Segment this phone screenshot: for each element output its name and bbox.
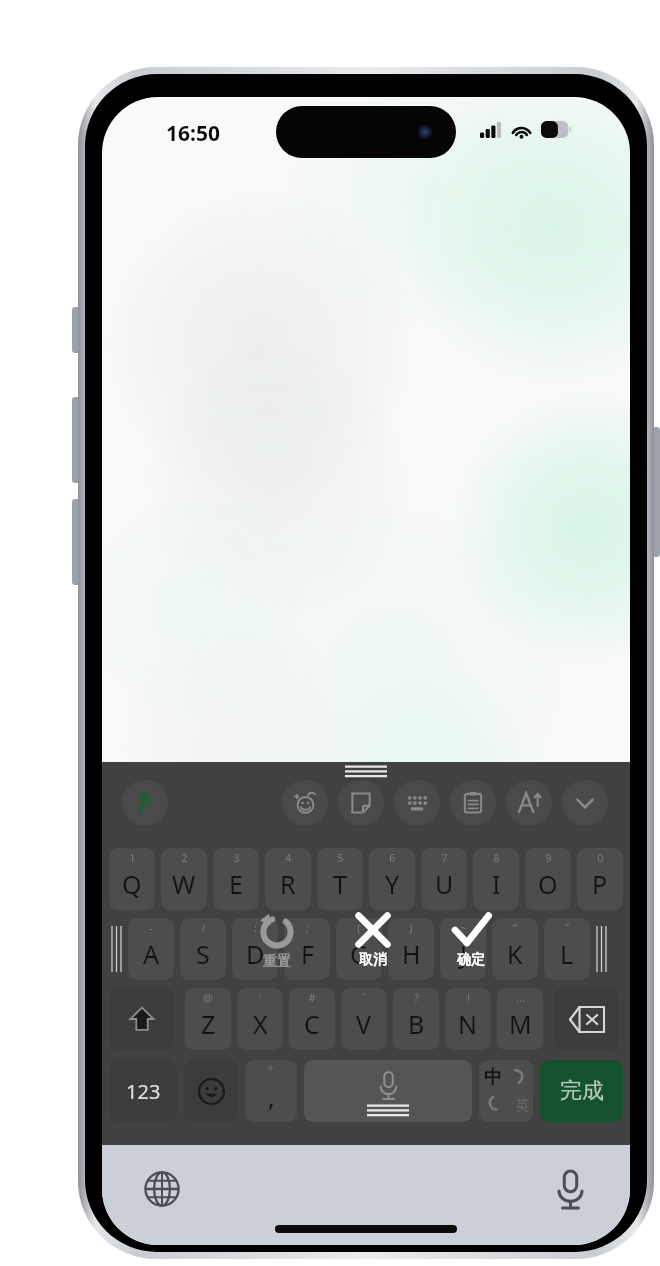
- staticText: P: [592, 867, 608, 901]
- button[interactable]: 1: [109, 848, 155, 910]
- staticText: W: [172, 867, 196, 901]
- button[interactable]: Shortcut phrase: [338, 780, 384, 826]
- staticText: 9: [545, 850, 552, 865]
- staticText: 0: [597, 850, 604, 865]
- staticText: 确定: [457, 951, 485, 969]
- staticText: R: [280, 867, 296, 901]
- button[interactable]: ~: [440, 918, 486, 980]
- staticText: ;: [306, 920, 309, 935]
- button[interactable]: 3: [213, 848, 259, 910]
- staticText: !: [467, 990, 470, 1005]
- staticText: `: [362, 990, 366, 1005]
- button[interactable]: Hide keyboard: [562, 780, 608, 826]
- button[interactable]: 2: [161, 848, 207, 910]
- staticText: X: [253, 1007, 268, 1041]
- staticText: E: [229, 867, 243, 901]
- staticText: F: [301, 937, 314, 971]
- staticText: 123: [126, 1078, 161, 1105]
- button[interactable]: Voice input space: [304, 1060, 472, 1122]
- staticText: K: [507, 937, 523, 971]
- button[interactable]: 6: [369, 848, 415, 910]
- button[interactable]: `: [341, 988, 387, 1050]
- staticText: O: [538, 867, 558, 901]
- button[interactable]: :: [232, 918, 278, 980]
- button[interactable]: @: [185, 988, 231, 1050]
- staticText: 1: [129, 850, 136, 865]
- button[interactable]: Switch Chinese English: [479, 1060, 533, 1122]
- staticText: (: [357, 920, 361, 935]
- button[interactable]: !: [445, 988, 491, 1050]
- button[interactable]: 7: [421, 848, 467, 910]
- staticText: V: [356, 1007, 372, 1041]
- button[interactable]: -: [128, 918, 174, 980]
- button[interactable]: 确定: [442, 910, 500, 969]
- button[interactable]: Emoji sticker: [282, 780, 328, 826]
- staticText: #: [308, 990, 316, 1005]
- button[interactable]: …: [497, 988, 543, 1050]
- staticText: S: [196, 937, 210, 971]
- staticText: °: [268, 1062, 274, 1078]
- staticText: 完成: [560, 1077, 604, 1105]
- staticText: ): [409, 920, 413, 935]
- button[interactable]: Voice input: [548, 1167, 592, 1211]
- staticText: ?: [414, 990, 419, 1005]
- button[interactable]: “: [492, 918, 538, 980]
- staticText: Y: [385, 867, 400, 901]
- button[interactable]: ): [388, 918, 434, 980]
- button[interactable]: 5: [317, 848, 363, 910]
- button[interactable]: Emoji: [184, 1060, 238, 1122]
- staticText: 取消: [359, 951, 387, 969]
- button[interactable]: ;: [284, 918, 330, 980]
- button[interactable]: Text style: [506, 780, 552, 826]
- staticText: B: [408, 1007, 425, 1041]
- button[interactable]: 4: [265, 848, 311, 910]
- staticText: 重置: [263, 953, 291, 971]
- button[interactable]: 重置: [248, 912, 306, 971]
- button[interactable]: °: [245, 1060, 297, 1122]
- staticText: @: [203, 990, 213, 1005]
- button[interactable]: 8: [473, 848, 519, 910]
- staticText: U: [435, 867, 454, 901]
- staticText: :: [254, 920, 257, 935]
- button[interactable]: #: [289, 988, 335, 1050]
- staticText: G: [350, 937, 369, 971]
- button[interactable]: Change language: [140, 1167, 184, 1211]
- button[interactable]: 完成: [540, 1060, 623, 1122]
- staticText: 3: [233, 850, 240, 865]
- staticText: J: [460, 937, 467, 971]
- button[interactable]: Delete: [554, 988, 619, 1050]
- staticText: C: [304, 1007, 320, 1041]
- staticText: N: [458, 1007, 478, 1041]
- staticText: D: [246, 937, 265, 971]
- button[interactable]: ”: [544, 918, 590, 980]
- staticText: Q: [122, 867, 142, 901]
- staticText: I: [492, 867, 501, 901]
- staticText: 英: [515, 1097, 529, 1115]
- button[interactable]: /: [180, 918, 226, 980]
- button[interactable]: 0: [577, 848, 623, 910]
- staticText: 6: [389, 850, 396, 865]
- button[interactable]: Shift: [109, 988, 174, 1050]
- staticText: H: [402, 937, 421, 971]
- button[interactable]: ?: [393, 988, 439, 1050]
- staticText: ~: [460, 920, 467, 935]
- staticText: A: [143, 937, 159, 971]
- button[interactable]: Keyboard layout: [394, 780, 440, 826]
- staticText: ‘: [259, 990, 261, 1005]
- staticText: 2: [181, 850, 188, 865]
- staticText: 8: [493, 850, 500, 865]
- button[interactable]: 9: [525, 848, 571, 910]
- button[interactable]: ‘: [237, 988, 283, 1050]
- button[interactable]: Clipboard: [450, 780, 496, 826]
- staticText: ,: [268, 1080, 275, 1114]
- button[interactable]: 取消: [344, 910, 402, 969]
- button[interactable]: (: [336, 918, 382, 980]
- staticText: Z: [201, 1007, 216, 1041]
- staticText: -: [149, 920, 153, 935]
- button[interactable]: 123: [109, 1060, 177, 1122]
- button[interactable]: Pinyin input method: [122, 780, 168, 826]
- staticText: 4: [285, 850, 292, 865]
- staticText: …: [516, 990, 525, 1005]
- staticText: 中: [484, 1066, 502, 1089]
- staticText: 7: [441, 850, 448, 865]
